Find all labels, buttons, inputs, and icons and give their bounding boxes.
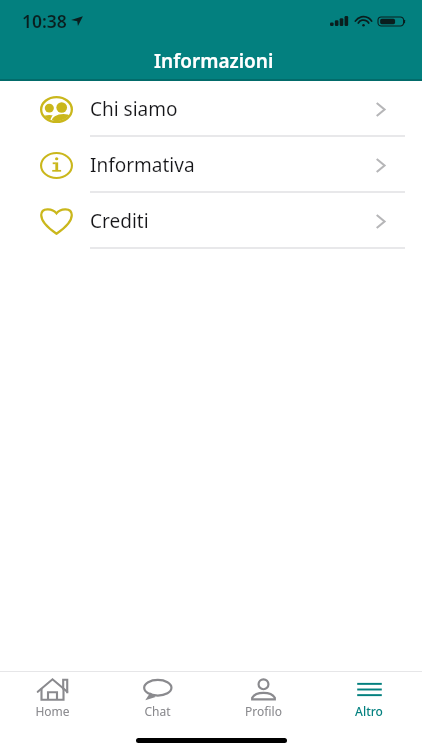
staticText: 10:38 <box>22 9 67 33</box>
staticText: Home <box>35 703 70 719</box>
staticText: Informativa <box>90 152 195 178</box>
staticText: Profilo <box>245 703 282 719</box>
button[interactable]: Profilo <box>210 672 316 720</box>
button[interactable]: Crediti <box>0 193 422 249</box>
staticText: Altro <box>355 703 383 719</box>
staticText: Crediti <box>90 208 149 234</box>
staticText: Informazioni <box>154 48 274 74</box>
button[interactable]: Altro <box>316 672 422 720</box>
staticText: Chi siamo <box>90 96 178 122</box>
button[interactable]: Informativa <box>0 137 422 193</box>
button[interactable]: Chi siamo <box>0 81 422 137</box>
staticText: Chat <box>144 703 171 719</box>
button[interactable]: Home <box>0 672 105 720</box>
button[interactable]: Chat <box>105 672 210 720</box>
